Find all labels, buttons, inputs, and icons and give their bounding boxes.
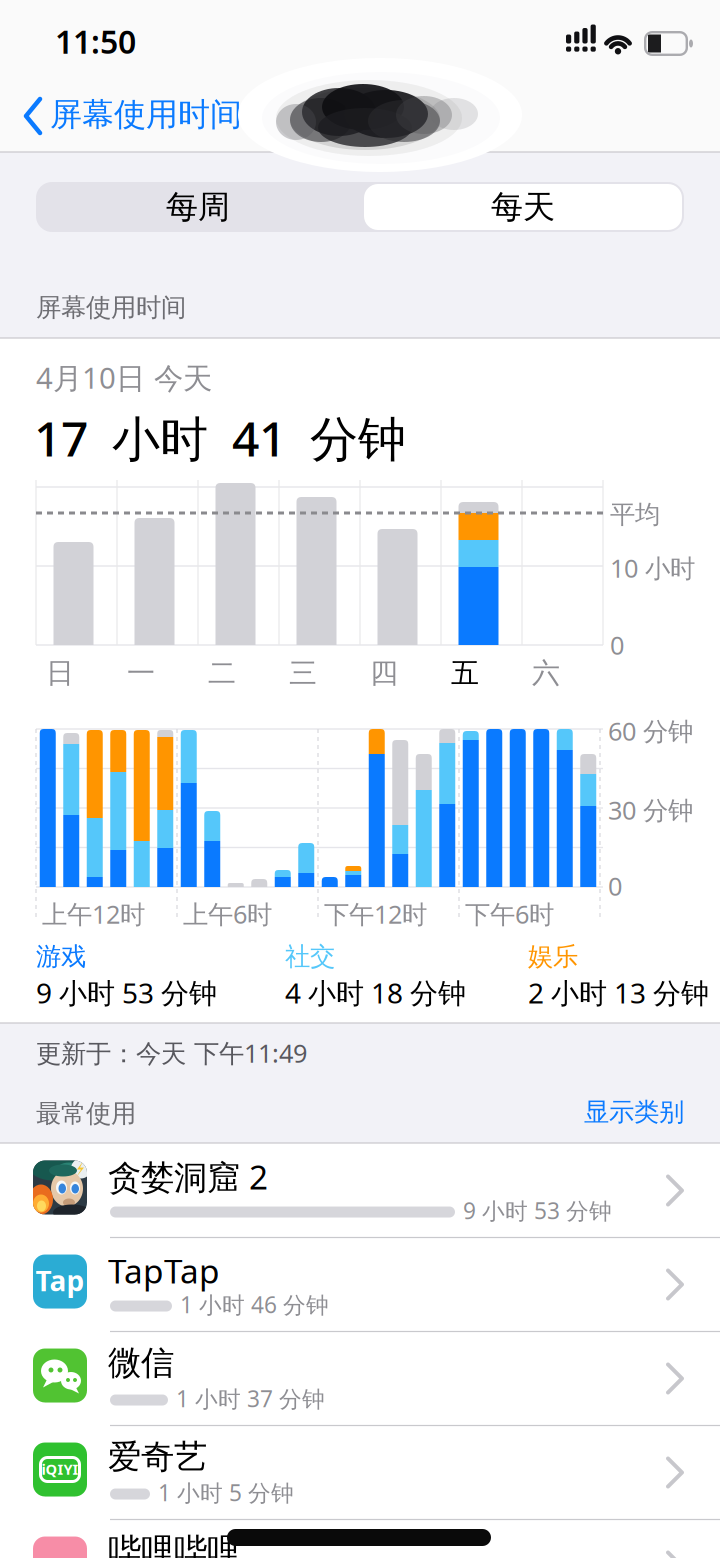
staticText: 10 小时 — [610, 551, 695, 585]
staticText: 六 — [532, 656, 560, 690]
staticText: 每天 — [491, 187, 555, 227]
staticText: 显示类别 — [584, 1096, 684, 1127]
staticText: 9 小时 53 分钟 — [36, 974, 217, 1011]
staticText: 1 小时 46 分钟 — [180, 1289, 329, 1320]
button[interactable]: 哔哩哔哩 — [0, 1519, 720, 1558]
button[interactable]: 贪婪洞窟 2 — [0, 1143, 720, 1237]
staticText: 0 — [608, 869, 622, 903]
staticText: 下午6时 — [465, 897, 554, 931]
staticText: 每周 — [166, 187, 230, 227]
staticText: 2 小时 13 分钟 — [528, 974, 709, 1011]
staticText: 哔哩哔哩 — [108, 1530, 240, 1558]
staticText: 1 小时 37 分钟 — [176, 1383, 325, 1414]
staticText: 社交 — [285, 941, 335, 972]
staticText: 微信 — [108, 1342, 174, 1383]
staticText: 四 — [370, 656, 398, 690]
staticText: 更新于：今天 下午11:49 — [36, 1036, 307, 1070]
staticText: 0 — [610, 628, 624, 662]
staticText: iQIYI — [41, 1459, 78, 1479]
staticText: 三 — [289, 656, 317, 690]
button[interactable]: 显示类别 — [484, 1094, 684, 1130]
staticText: 屏幕使用时间 — [36, 292, 186, 323]
staticText: 屏幕使用时间 — [50, 95, 242, 134]
staticText: 17 小时 41 分钟 — [34, 406, 406, 470]
staticText: 下午12时 — [324, 897, 427, 931]
button[interactable]: 屏幕使用时间 — [20, 92, 300, 140]
staticText: 1 小时 5 分钟 — [158, 1477, 294, 1508]
button[interactable]: 每天 — [364, 184, 682, 230]
staticText: 贪婪洞窟 2 — [108, 1154, 268, 1199]
staticText: 上午6时 — [183, 897, 272, 931]
staticText: 娱乐 — [528, 941, 578, 972]
button[interactable]: 微信 — [0, 1331, 720, 1425]
staticText: 二 — [208, 656, 236, 690]
staticText: 平均 — [610, 499, 660, 530]
staticText: 爱奇艺 — [108, 1436, 207, 1477]
staticText: 一 — [127, 656, 155, 690]
staticText: 最常使用 — [36, 1098, 136, 1129]
staticText: 上午12时 — [42, 897, 145, 931]
staticText: Tap — [35, 1262, 84, 1299]
staticText: 60 分钟 — [608, 714, 693, 748]
staticText: 日 — [46, 656, 74, 690]
staticText: 30 分钟 — [608, 793, 693, 827]
staticText: 4 小时 18 分钟 — [285, 974, 466, 1011]
button[interactable]: 每周 — [36, 182, 360, 232]
staticText: 4月10日 今天 — [36, 358, 212, 397]
button[interactable]: Tap — [0, 1237, 720, 1331]
staticText: 五 — [451, 656, 479, 690]
staticText: 11:50 — [55, 20, 136, 62]
staticText: 9 小时 53 分钟 — [463, 1195, 612, 1226]
staticText: 游戏 — [36, 941, 86, 972]
button[interactable]: iQIYI — [0, 1425, 720, 1519]
staticText: TapTap — [108, 1248, 220, 1293]
